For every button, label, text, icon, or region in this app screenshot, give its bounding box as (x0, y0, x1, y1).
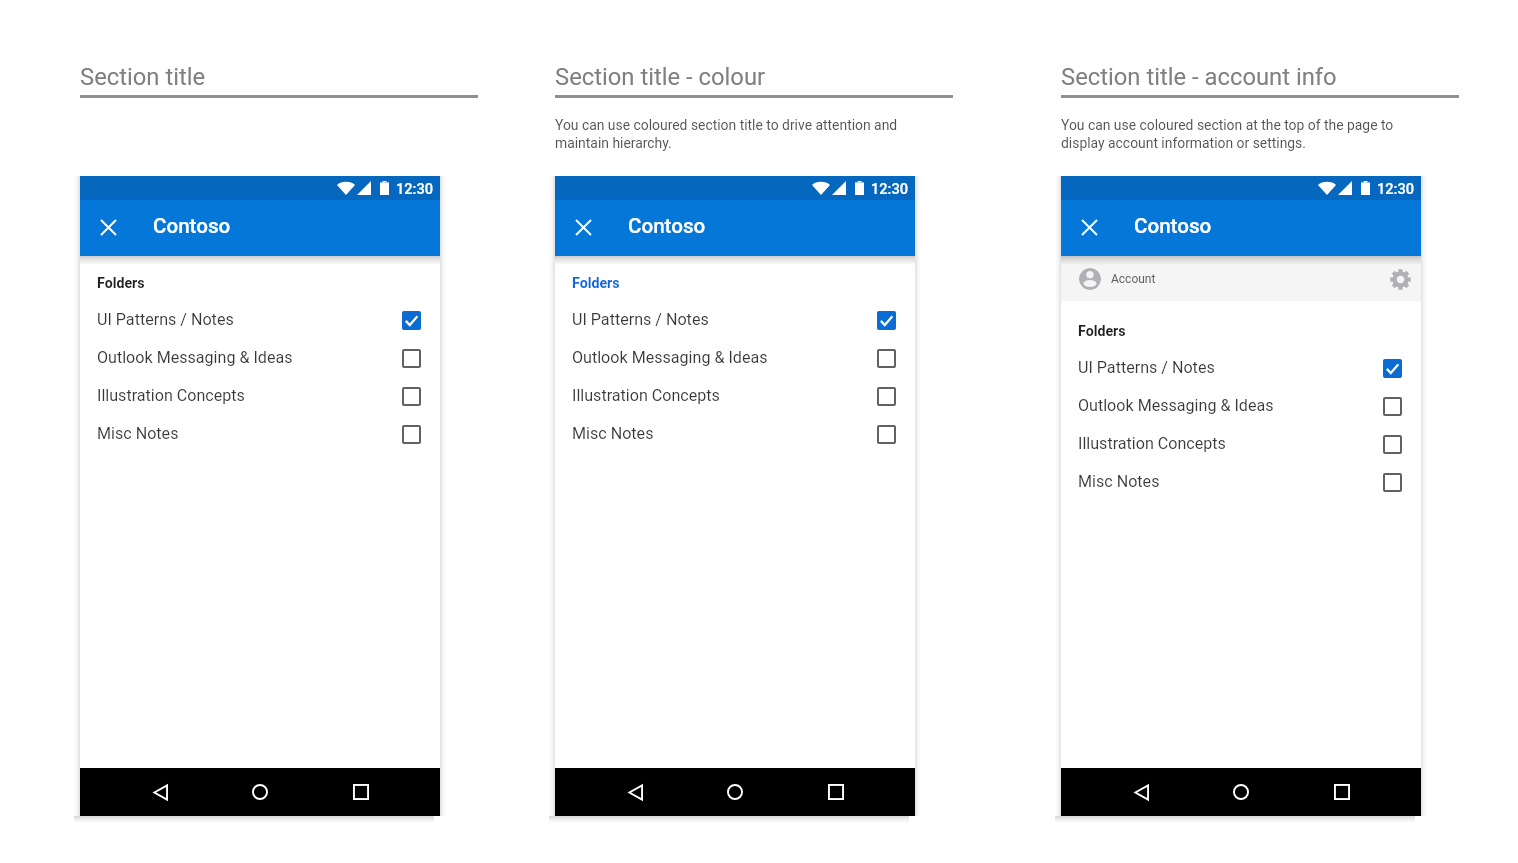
button[interactable]: Recents (349, 780, 373, 804)
button[interactable]: Outlook Messaging & Ideas (80, 338, 440, 376)
button[interactable]: Recents (824, 780, 848, 804)
staticText: UI Patterns / Notes (572, 310, 709, 329)
staticText: Contoso (1134, 214, 1212, 238)
button[interactable]: Misc Notes (80, 414, 440, 452)
button[interactable]: Close (1070, 208, 1108, 246)
staticText: Account (1111, 272, 1156, 286)
staticText: 12:30 (1377, 180, 1415, 197)
staticText: Contoso (153, 214, 231, 238)
button[interactable]: Back (1129, 780, 1153, 804)
staticText: 12:30 (871, 180, 909, 197)
staticText: Folders (97, 275, 145, 292)
button[interactable]: UI Patterns / Notes (80, 300, 440, 338)
button[interactable]: Misc Notes (555, 414, 915, 452)
staticText: Outlook Messaging & Ideas (97, 348, 293, 367)
button[interactable]: Home (248, 780, 272, 804)
button[interactable]: Illustration Concepts (80, 376, 440, 414)
staticText: Contoso (628, 214, 706, 238)
button[interactable]: Account (1061, 256, 1421, 301)
button[interactable]: UI Patterns / Notes (555, 300, 915, 338)
button[interactable]: Back (623, 780, 647, 804)
staticText: Illustration Concepts (97, 386, 245, 405)
staticText: 12:30 (396, 180, 434, 197)
staticText: Folders (1078, 323, 1126, 340)
staticText: Folders (572, 275, 620, 292)
button[interactable]: Close (89, 208, 127, 246)
button[interactable]: Home (723, 780, 747, 804)
staticText: Section title - colour (555, 63, 766, 91)
button[interactable]: Misc Notes (1061, 462, 1421, 500)
button[interactable]: Settings (1387, 266, 1413, 292)
button[interactable]: Recents (1330, 780, 1354, 804)
staticText: Misc Notes (572, 424, 654, 443)
staticText: Illustration Concepts (572, 386, 720, 405)
staticText: UI Patterns / Notes (97, 310, 234, 329)
staticText: Illustration Concepts (1078, 434, 1226, 453)
staticText: You can use coloured section title to dr… (555, 117, 898, 152)
button[interactable]: UI Patterns / Notes (1061, 348, 1421, 386)
staticText: Section title - account info (1061, 63, 1337, 91)
staticText: Outlook Messaging & Ideas (572, 348, 768, 367)
staticText: Misc Notes (97, 424, 179, 443)
button[interactable]: Outlook Messaging & Ideas (555, 338, 915, 376)
button[interactable]: Close (564, 208, 602, 246)
button[interactable]: Home (1229, 780, 1253, 804)
staticText: Misc Notes (1078, 472, 1160, 491)
staticText: You can use coloured section at the top … (1061, 117, 1394, 152)
button[interactable]: Illustration Concepts (555, 376, 915, 414)
button[interactable]: Illustration Concepts (1061, 424, 1421, 462)
staticText: Outlook Messaging & Ideas (1078, 396, 1274, 415)
button[interactable]: Outlook Messaging & Ideas (1061, 386, 1421, 424)
staticText: Section title (80, 63, 206, 91)
staticText: UI Patterns / Notes (1078, 358, 1215, 377)
button[interactable]: Back (148, 780, 172, 804)
